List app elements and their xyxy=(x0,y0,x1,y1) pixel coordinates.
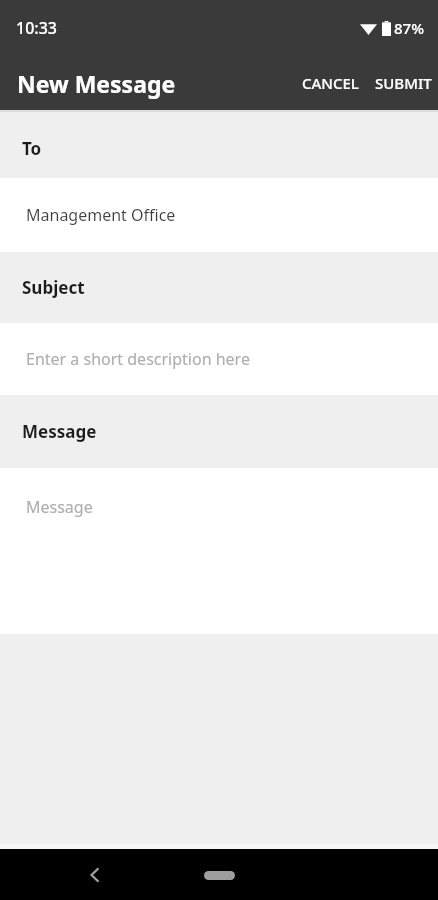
staticText: 87% xyxy=(394,18,424,38)
staticText: Management Office xyxy=(26,204,176,226)
button[interactable]: Home xyxy=(184,855,254,895)
staticText: Message xyxy=(22,420,97,443)
button[interactable]: SUBMIT xyxy=(367,63,438,103)
staticText: Message xyxy=(26,496,93,518)
staticText: CANCEL xyxy=(302,73,359,93)
staticText: Enter a short description here xyxy=(26,348,250,370)
button[interactable]: Management Office xyxy=(0,178,438,252)
staticText: New Message xyxy=(17,68,176,99)
staticText: 10:33 xyxy=(16,17,57,39)
staticText: Subject xyxy=(22,276,85,299)
button[interactable]: Back xyxy=(72,852,118,898)
staticText: To xyxy=(22,137,42,160)
button[interactable]: Enter a short description here xyxy=(0,323,438,395)
staticText: SUBMIT xyxy=(375,73,432,93)
button[interactable]: Message xyxy=(0,468,438,634)
button[interactable]: CANCEL xyxy=(294,63,367,103)
